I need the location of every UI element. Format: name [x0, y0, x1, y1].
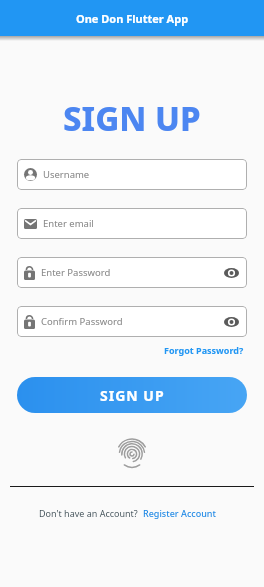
button[interactable]: SIGN UP	[17, 377, 247, 413]
button[interactable]: Register Account	[143, 507, 216, 519]
button[interactable]	[115, 437, 149, 471]
staticText: Enter Password	[41, 266, 111, 279]
button[interactable]: Username	[17, 159, 247, 190]
button[interactable]: Forgot Password?	[164, 344, 244, 356]
button[interactable]: Enter email	[17, 208, 247, 239]
staticText: SIGN UP	[100, 386, 165, 405]
button[interactable]: Confirm Password	[17, 306, 247, 337]
button[interactable]: Enter Password	[17, 257, 247, 288]
staticText: Enter email	[43, 217, 94, 230]
staticText: Username	[43, 168, 90, 181]
staticText: Confirm Password	[41, 315, 123, 328]
staticText: One Don Flutter App	[76, 11, 189, 26]
staticText: SIGN UP	[63, 96, 201, 141]
staticText: Don't have an Account?	[39, 507, 138, 519]
